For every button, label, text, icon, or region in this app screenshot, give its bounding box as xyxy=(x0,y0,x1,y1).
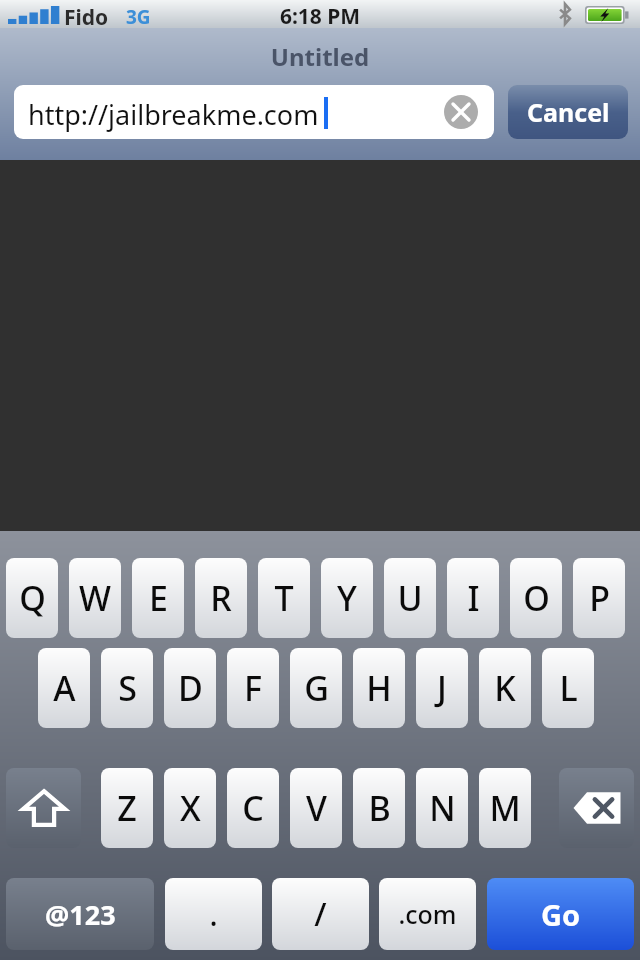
staticText: Fido xyxy=(64,3,109,31)
staticText: . xyxy=(209,894,218,935)
button[interactable]: Shift xyxy=(6,768,81,848)
button[interactable]: Cancel xyxy=(508,85,628,139)
staticText: E xyxy=(149,575,168,621)
staticText: X xyxy=(180,785,201,831)
staticText: U xyxy=(397,575,423,621)
button[interactable]: Z xyxy=(101,768,153,848)
button[interactable]: B xyxy=(353,768,405,848)
button[interactable]: U xyxy=(384,558,436,638)
staticText: O xyxy=(523,575,550,621)
button[interactable]: F xyxy=(227,648,279,728)
staticText: V xyxy=(306,785,327,831)
staticText: R xyxy=(210,575,232,621)
button[interactable]: .com xyxy=(379,878,476,950)
staticText: W xyxy=(79,575,111,621)
staticText: J xyxy=(437,665,447,711)
button[interactable]: S xyxy=(101,648,153,728)
button[interactable]: I xyxy=(447,558,499,638)
staticText: Cancel xyxy=(527,95,610,129)
button[interactable]: J xyxy=(416,648,468,728)
button[interactable]: K xyxy=(479,648,531,728)
button[interactable]: Q xyxy=(6,558,58,638)
button[interactable]: M xyxy=(479,768,531,848)
staticText: 6:18 PM xyxy=(0,2,640,30)
staticText: M xyxy=(489,785,521,831)
button[interactable]: R xyxy=(195,558,247,638)
staticText: I xyxy=(467,575,480,621)
button[interactable]: T xyxy=(258,558,310,638)
staticText: 3G xyxy=(126,4,151,30)
button[interactable]: N xyxy=(416,768,468,848)
button[interactable]: L xyxy=(542,648,594,728)
staticText: B xyxy=(368,785,391,831)
button[interactable]: X xyxy=(164,768,216,848)
button[interactable]: Y xyxy=(321,558,373,638)
button[interactable]: . xyxy=(165,878,262,950)
staticText: G xyxy=(304,665,329,711)
staticText: .com xyxy=(398,897,457,931)
staticText: H xyxy=(366,665,392,711)
button[interactable]: Go xyxy=(487,878,634,950)
staticText: T xyxy=(274,575,294,621)
button[interactable]: W xyxy=(69,558,121,638)
staticText: K xyxy=(494,665,516,711)
button[interactable]: http://jailbreakme.com xyxy=(14,85,494,139)
button[interactable]: @123 xyxy=(6,878,154,950)
button[interactable]: H xyxy=(353,648,405,728)
staticText: A xyxy=(53,665,76,711)
staticText: http://jailbreakme.com xyxy=(28,96,319,133)
staticText: C xyxy=(242,785,264,831)
staticText: S xyxy=(118,665,137,711)
button[interactable]: / xyxy=(272,878,369,950)
staticText: Untitled xyxy=(0,40,640,73)
button[interactable]: A xyxy=(38,648,90,728)
button[interactable]: E xyxy=(132,558,184,638)
button[interactable]: Clear text xyxy=(444,95,478,129)
button[interactable]: V xyxy=(290,768,342,848)
staticText: @123 xyxy=(45,896,116,933)
staticText: / xyxy=(314,892,327,936)
button[interactable]: D xyxy=(164,648,216,728)
staticText: Z xyxy=(117,785,137,831)
staticText: Y xyxy=(337,575,357,621)
staticText: D xyxy=(178,665,203,711)
staticText: L xyxy=(559,665,578,711)
button[interactable]: P xyxy=(573,558,625,638)
staticText: Q xyxy=(19,575,46,621)
staticText: Go xyxy=(541,895,581,934)
staticText: F xyxy=(244,665,262,711)
button[interactable]: O xyxy=(510,558,562,638)
button[interactable]: C xyxy=(227,768,279,848)
button[interactable]: Backspace xyxy=(559,768,634,848)
staticText: N xyxy=(429,785,456,831)
button[interactable]: G xyxy=(290,648,342,728)
staticText: P xyxy=(589,575,610,621)
